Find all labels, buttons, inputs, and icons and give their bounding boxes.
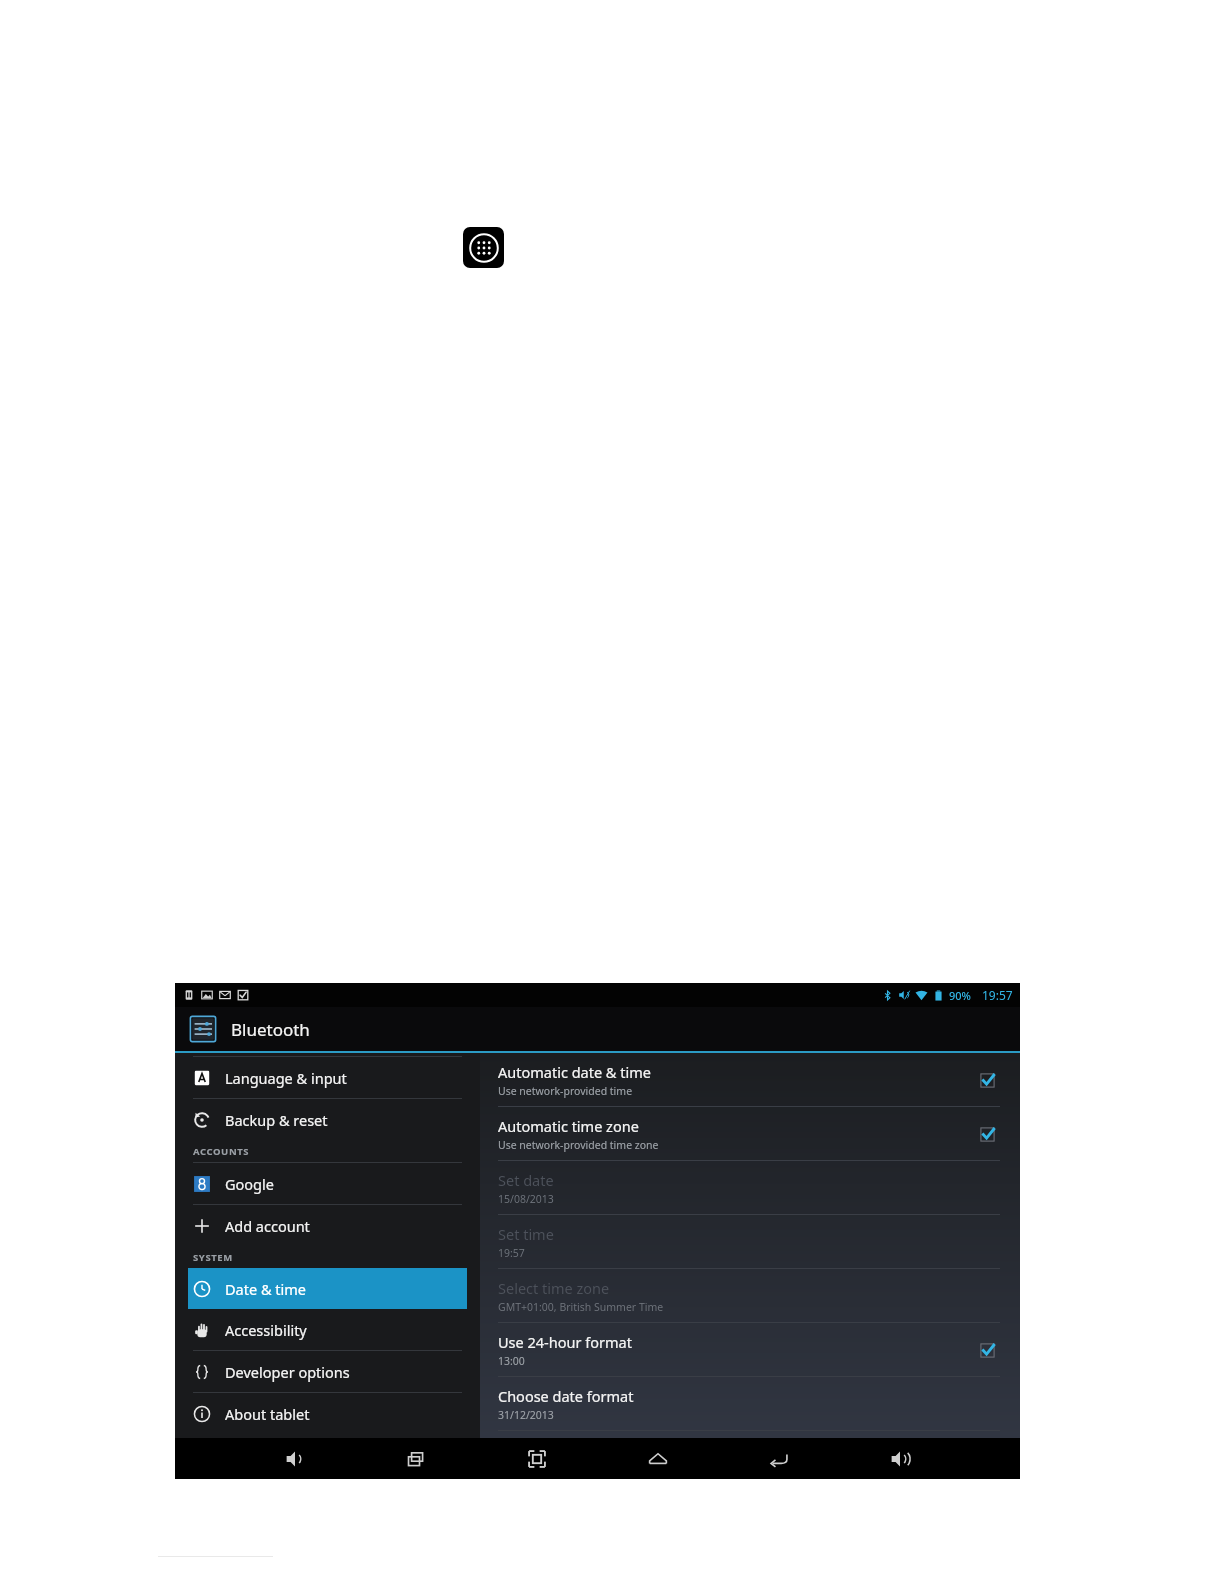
button[interactable]: Backup & reset (175, 1099, 480, 1140)
staticText: Use 24-hour format (498, 1332, 632, 1352)
button[interactable]: Use 24-hour format (974, 1337, 1000, 1363)
staticText: Add account (225, 1216, 310, 1236)
staticText: Set date (498, 1170, 554, 1190)
staticText: Accessibility (225, 1320, 307, 1340)
staticText: Use network-provided time (498, 1084, 633, 1098)
staticText: 31/12/2013 (498, 1408, 554, 1422)
button[interactable]: About tablet (175, 1393, 480, 1434)
button[interactable]: Screenshot (476, 1438, 597, 1479)
staticText: 19:57 (498, 1246, 525, 1260)
button[interactable]: Back (718, 1438, 839, 1479)
staticText: About tablet (225, 1404, 310, 1424)
staticText: Choose date format (498, 1386, 634, 1406)
button[interactable]: Choose date format (480, 1377, 1020, 1430)
staticText: Use network-provided time zone (498, 1138, 659, 1152)
button[interactable]: Language & input (175, 1057, 480, 1098)
button[interactable]: Recent apps (355, 1438, 476, 1479)
staticText: SYSTEM (193, 1251, 233, 1264)
button[interactable]: Developer options (175, 1351, 480, 1392)
staticText: Set time (498, 1224, 554, 1244)
staticText: Language & input (225, 1068, 347, 1088)
staticText: Select time zone (498, 1278, 610, 1298)
button[interactable]: Set time (480, 1215, 1020, 1268)
button[interactable]: Settings (187, 1013, 219, 1045)
staticText: Google (225, 1174, 274, 1194)
staticText: 15/08/2013 (498, 1192, 554, 1206)
button[interactable]: Automatic time zone (974, 1121, 1000, 1147)
staticText: 13:00 (498, 1354, 525, 1368)
staticText: Backup & reset (225, 1110, 328, 1130)
button[interactable]: Add account (175, 1205, 480, 1246)
staticText: Developer options (225, 1362, 350, 1382)
button[interactable]: Automatic time zone (480, 1107, 1020, 1160)
button[interactable]: Automatic date & time (974, 1067, 1000, 1093)
button[interactable]: Select time zone (480, 1269, 1020, 1322)
staticText: Automatic time zone (498, 1116, 639, 1136)
staticText: Bluetooth (231, 1018, 310, 1041)
button[interactable]: Volume up (839, 1438, 960, 1479)
button[interactable]: Use 24-hour format (480, 1323, 1020, 1376)
staticText: 19:57 (982, 987, 1013, 1003)
button[interactable]: Automatic date & time (480, 1053, 1020, 1106)
button[interactable]: Accessibility (175, 1309, 480, 1350)
button[interactable]: Apps (463, 227, 504, 268)
staticText: ACCOUNTS (193, 1145, 250, 1158)
button[interactable]: Date & time (188, 1268, 467, 1309)
staticText: GMT+01:00, British Summer Time (498, 1300, 664, 1314)
button[interactable]: Set date (480, 1161, 1020, 1214)
button[interactable]: Home (597, 1438, 718, 1479)
button[interactable]: Volume down (235, 1438, 355, 1479)
button[interactable]: Google (175, 1163, 480, 1204)
staticText: Automatic date & time (498, 1062, 651, 1082)
staticText: Date & time (225, 1279, 306, 1299)
staticText: 90% (949, 988, 971, 1003)
